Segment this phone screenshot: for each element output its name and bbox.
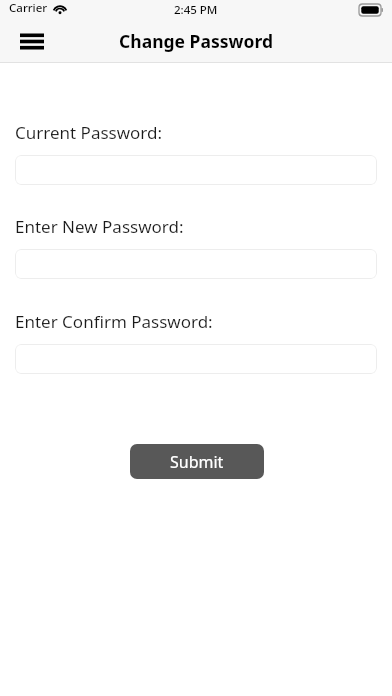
staticText: 2:45 PM [174,2,218,18]
staticText: Current Password: [15,121,163,144]
staticText: Submit [170,451,224,473]
staticText: Enter New Password: [15,215,184,238]
button[interactable]: Submit [130,444,264,479]
button[interactable]: Enter Confirm Password: [15,344,377,374]
staticText: Change Password [119,29,273,53]
staticText: Enter Confirm Password: [15,310,213,333]
button[interactable]: Current Password: [15,155,377,185]
button[interactable]: Enter New Password: [15,249,377,279]
staticText: Carrier [9,0,48,16]
button[interactable]: Menu [14,23,50,59]
